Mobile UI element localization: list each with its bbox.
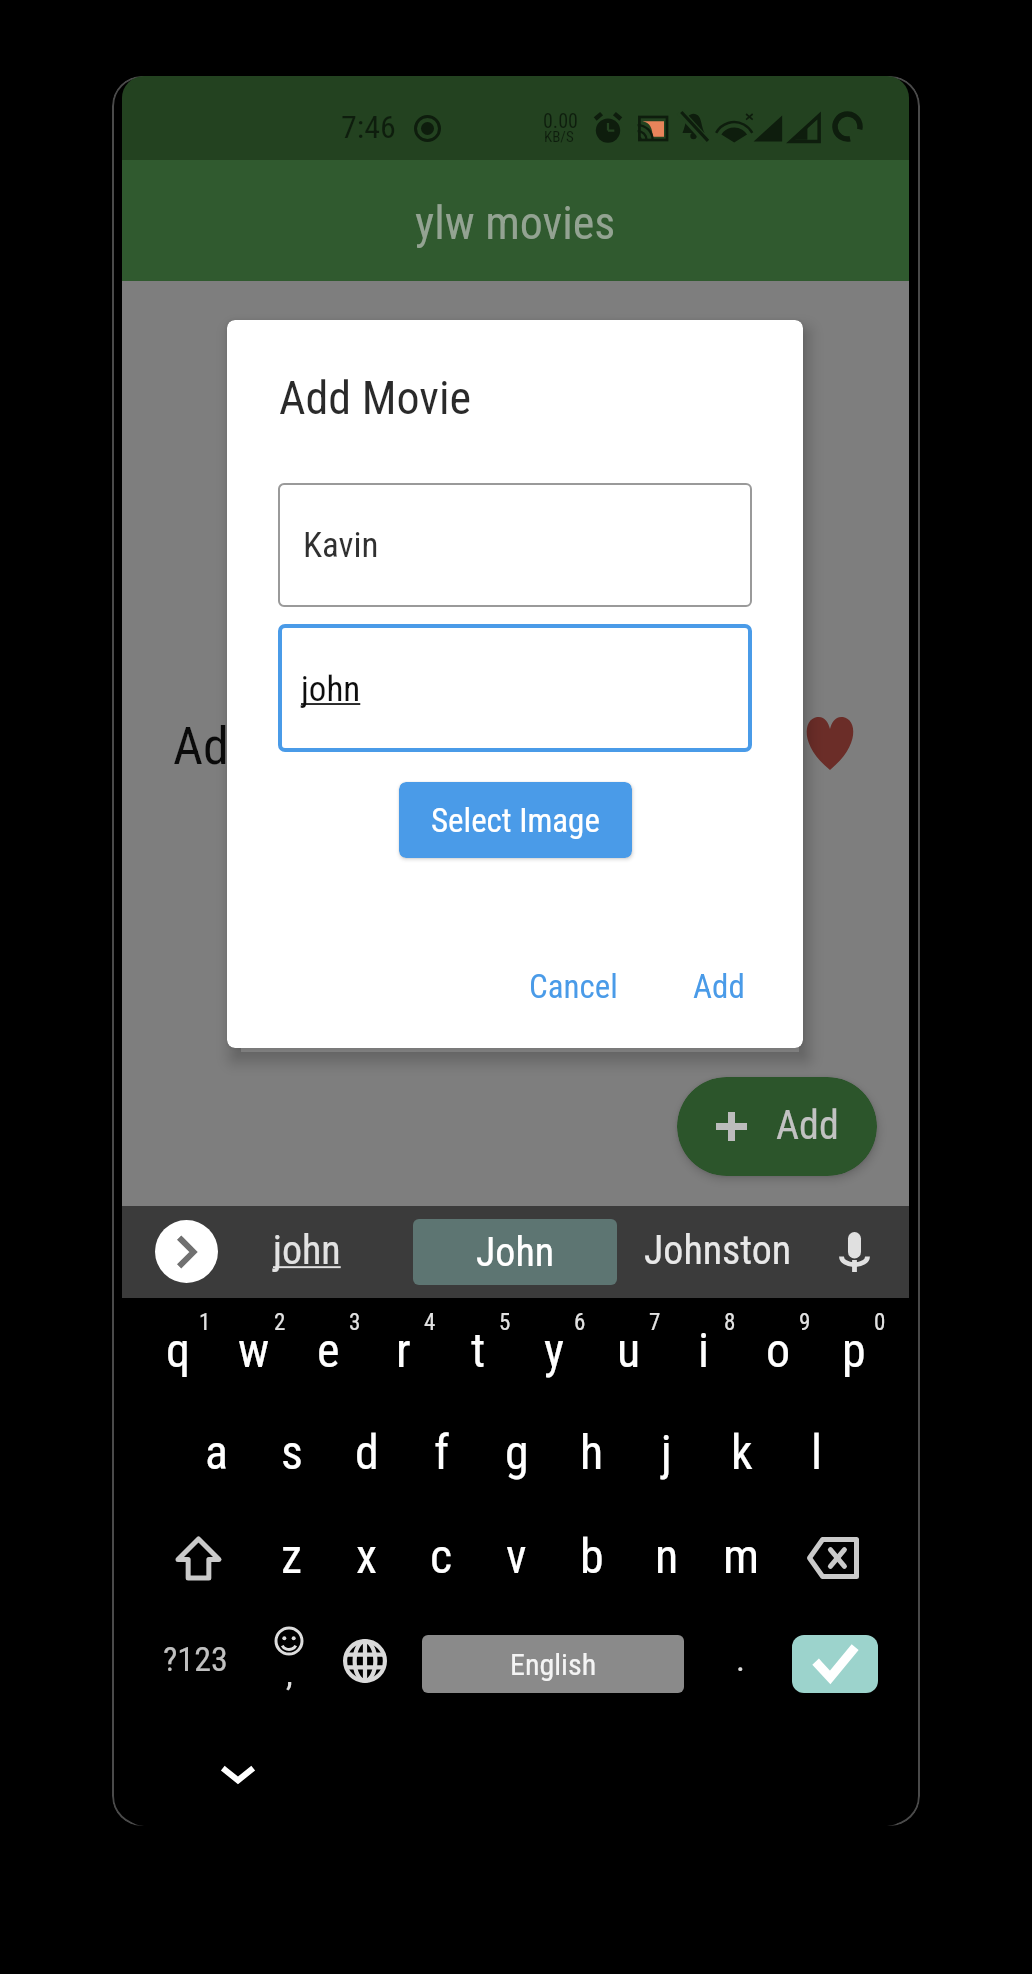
button[interactable]: c: [404, 1506, 479, 1606]
button[interactable]: m: [704, 1506, 779, 1606]
button[interactable]: 0: [816, 1298, 891, 1398]
staticText: v: [506, 1528, 527, 1584]
staticText: g: [505, 1424, 529, 1480]
staticText: x: [356, 1528, 378, 1584]
staticText: English: [510, 1647, 597, 1682]
button[interactable]: 4: [366, 1298, 441, 1398]
button[interactable]: English: [422, 1635, 684, 1693]
staticText: f: [434, 1424, 450, 1480]
staticText: 9: [799, 1309, 811, 1336]
button[interactable]: .: [710, 1609, 770, 1709]
staticText: w: [238, 1322, 270, 1378]
staticText: Cancel: [529, 967, 618, 1006]
button[interactable]: 6: [516, 1298, 591, 1398]
button[interactable]: a: [179, 1402, 254, 1502]
staticText: KB/S: [544, 128, 574, 146]
button[interactable]: Johnston: [638, 1227, 798, 1274]
staticText: Add movies: [173, 716, 414, 777]
button[interactable]: 8: [666, 1298, 741, 1398]
button[interactable]: 7: [591, 1298, 666, 1398]
staticText: 6: [574, 1309, 586, 1336]
staticText: k: [731, 1424, 753, 1480]
staticText: l: [811, 1424, 823, 1480]
button[interactable]: s: [254, 1402, 329, 1502]
staticText: y: [544, 1322, 564, 1378]
button[interactable]: 2: [216, 1298, 291, 1398]
staticText: john: [301, 669, 361, 710]
button[interactable]: n: [629, 1506, 704, 1606]
staticText: a: [205, 1424, 228, 1480]
staticText: Add: [776, 1102, 839, 1149]
staticText: m: [723, 1528, 760, 1584]
staticText: ,: [286, 1654, 293, 1694]
staticText: d: [355, 1424, 379, 1480]
button[interactable]: Cancel: [515, 953, 632, 1020]
button[interactable]: Backspace: [785, 1508, 881, 1608]
staticText: j: [661, 1424, 672, 1480]
button[interactable]: Switch language: [327, 1611, 403, 1711]
staticText: e: [317, 1322, 340, 1378]
staticText: 5: [499, 1309, 511, 1336]
staticText: 0.00: [543, 109, 578, 132]
staticText: Johnston: [644, 1227, 792, 1274]
staticText: john: [273, 1227, 341, 1274]
staticText: z: [281, 1528, 303, 1584]
staticText: Add Movie: [279, 371, 472, 425]
button[interactable]: Add: [679, 953, 759, 1020]
button[interactable]: f: [404, 1402, 479, 1502]
staticText: o: [766, 1322, 791, 1378]
staticText: John: [476, 1229, 555, 1276]
staticText: q: [166, 1322, 191, 1378]
button[interactable]: ?123: [141, 1609, 249, 1709]
staticText: ylw movies: [415, 196, 616, 250]
staticText: 1: [199, 1309, 211, 1336]
staticText: s: [281, 1424, 303, 1480]
button[interactable]: john: [278, 624, 752, 752]
button[interactable]: j: [629, 1402, 704, 1502]
staticText: i: [698, 1322, 710, 1378]
button[interactable]: Kavin: [278, 483, 752, 607]
staticText: h: [580, 1424, 604, 1480]
staticText: b: [580, 1528, 604, 1584]
button[interactable]: v: [479, 1506, 554, 1606]
button[interactable]: k: [704, 1402, 779, 1502]
button[interactable]: ,: [251, 1609, 327, 1709]
staticText: r: [396, 1322, 411, 1378]
staticText: Select Image: [431, 801, 600, 840]
button[interactable]: b: [554, 1506, 629, 1606]
button[interactable]: z: [254, 1506, 329, 1606]
button[interactable]: 5: [441, 1298, 516, 1398]
button[interactable]: Add: [677, 1077, 877, 1176]
staticText: 7: [649, 1309, 661, 1336]
button[interactable]: Hide keyboard: [211, 1748, 265, 1802]
staticText: 7:46: [341, 108, 396, 146]
button[interactable]: d: [329, 1402, 404, 1502]
staticText: 0: [874, 1309, 886, 1336]
button[interactable]: l: [779, 1402, 854, 1502]
staticText: t: [471, 1322, 486, 1378]
button[interactable]: Voice input: [824, 1222, 884, 1282]
staticText: Kavin: [303, 525, 379, 566]
button[interactable]: john: [267, 1227, 347, 1274]
staticText: Add: [693, 967, 745, 1006]
button[interactable]: 9: [741, 1298, 816, 1398]
staticText: 8: [724, 1309, 736, 1336]
button[interactable]: Done: [792, 1635, 878, 1693]
button[interactable]: x: [329, 1506, 404, 1606]
staticText: 2: [274, 1309, 286, 1336]
button[interactable]: John: [413, 1219, 617, 1285]
staticText: c: [430, 1528, 453, 1584]
button[interactable]: 1: [141, 1298, 216, 1398]
staticText: u: [617, 1322, 641, 1378]
staticText: p: [842, 1322, 866, 1378]
button[interactable]: h: [554, 1402, 629, 1502]
staticText: .: [736, 1639, 745, 1679]
button[interactable]: Shift: [155, 1508, 241, 1608]
staticText: 3: [349, 1309, 361, 1336]
button[interactable]: 3: [291, 1298, 366, 1398]
staticText: n: [655, 1528, 679, 1584]
button[interactable]: g: [479, 1402, 554, 1502]
button[interactable]: Select Image: [399, 782, 632, 858]
staticText: ?123: [163, 1639, 228, 1679]
button[interactable]: More suggestions: [155, 1220, 218, 1283]
